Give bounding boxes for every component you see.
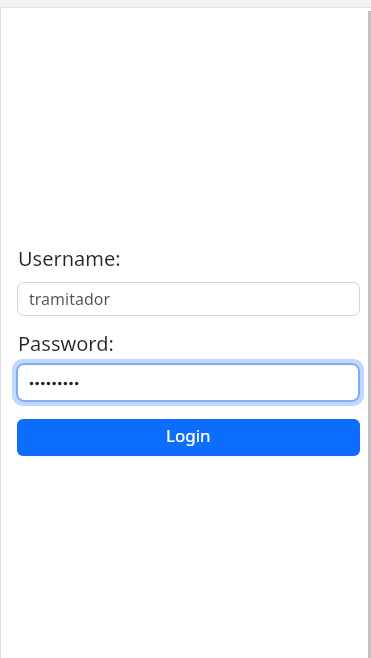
staticText: tramitador — [29, 288, 111, 310]
button[interactable]: Login — [17, 419, 360, 456]
button[interactable] — [12, 359, 364, 406]
staticText: Username: — [18, 245, 121, 272]
button[interactable]: tramitador — [17, 282, 360, 316]
staticText: Password: — [18, 330, 114, 357]
staticText: Login — [166, 424, 211, 447]
